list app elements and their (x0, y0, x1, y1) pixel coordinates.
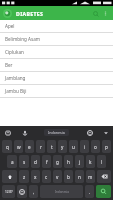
button[interactable]: z (19, 170, 29, 183)
button[interactable]: More options (101, 9, 110, 18)
button[interactable]: m (86, 170, 95, 183)
button[interactable]: . (85, 185, 94, 198)
staticText: s (23, 159, 26, 165)
staticText: w (17, 144, 21, 150)
staticText: Belimbing Asam (5, 36, 41, 42)
staticText: t (51, 144, 53, 150)
staticText: u (72, 144, 75, 150)
staticText: . (89, 189, 91, 195)
button[interactable]: y (58, 140, 67, 153)
staticText: Apel (5, 23, 15, 29)
button[interactable]: i (80, 140, 89, 153)
button[interactable]: t (47, 140, 56, 153)
button[interactable]: Jambu Biji (0, 85, 113, 97)
staticText: j (79, 159, 81, 165)
button[interactable]: Shift (2, 170, 17, 183)
button[interactable]: Indonesia (40, 185, 83, 198)
button[interactable]: e (25, 140, 34, 153)
button[interactable]: b (64, 170, 73, 183)
staticText: 123!? (5, 190, 13, 194)
button[interactable]: c (42, 170, 51, 183)
button[interactable]: l (97, 155, 106, 168)
staticText: p (105, 144, 108, 150)
staticText: h (67, 159, 70, 165)
staticText: o (94, 144, 97, 150)
staticText: n (78, 174, 81, 180)
staticText: d (34, 159, 37, 165)
staticText: k (89, 159, 92, 165)
staticText: m (88, 174, 93, 180)
button[interactable]: f (42, 155, 51, 168)
button[interactable]: d (31, 155, 40, 168)
staticText: Jamblang (5, 75, 26, 81)
button[interactable]: s (19, 155, 29, 168)
button[interactable]: u (69, 140, 78, 153)
button[interactable]: Voice input (20, 128, 29, 137)
staticText: b (67, 174, 70, 180)
staticText: x (34, 174, 37, 180)
button[interactable]: Emoji keyboard (17, 185, 27, 198)
button[interactable]: a (7, 155, 17, 168)
staticText: Ciplukan (5, 49, 24, 55)
button[interactable]: Search (96, 185, 111, 198)
staticText: DIABETES (16, 10, 44, 17)
staticText: y (61, 144, 64, 150)
button[interactable]: Hide keyboard (101, 128, 110, 137)
button[interactable]: App icon (3, 9, 12, 18)
staticText: c (45, 174, 48, 180)
button[interactable]: j (75, 155, 84, 168)
staticText: q (6, 144, 9, 150)
button[interactable]: q (2, 140, 12, 153)
staticText: f (46, 159, 48, 165)
button[interactable]: r (36, 140, 45, 153)
button[interactable]: Indonesia (44, 129, 69, 136)
button[interactable]: 123!? (2, 185, 15, 198)
staticText: , (33, 189, 35, 195)
staticText: v (56, 174, 59, 180)
button[interactable]: Backspace (97, 170, 111, 183)
button[interactable]: x (31, 170, 40, 183)
button[interactable]: Search (90, 8, 101, 19)
staticText: i (84, 144, 86, 150)
staticText: Jambu Biji (5, 88, 27, 94)
button[interactable]: Apel (0, 20, 113, 32)
staticText: r (40, 144, 42, 150)
staticText: z (23, 174, 26, 180)
button[interactable]: Jamblang (0, 72, 113, 84)
button[interactable]: n (75, 170, 84, 183)
button[interactable]: w (14, 140, 23, 153)
staticText: Indonesia (55, 190, 69, 194)
button[interactable]: p (102, 140, 111, 153)
staticText: Ber (5, 62, 13, 68)
button[interactable]: h (64, 155, 73, 168)
staticText: a (11, 159, 14, 165)
button[interactable]: o (91, 140, 100, 153)
button[interactable]: k (86, 155, 95, 168)
button[interactable]: g (53, 155, 62, 168)
button[interactable]: Ber (0, 59, 113, 71)
staticText: g (56, 159, 59, 165)
staticText: Indonesia (48, 130, 65, 135)
button[interactable]: v (53, 170, 62, 183)
staticText: e (28, 144, 31, 150)
button[interactable]: Belimbing Asam (0, 33, 113, 45)
staticText: l (101, 159, 103, 165)
button[interactable]: , (29, 185, 38, 198)
button[interactable]: Ciplukan (0, 46, 113, 58)
button[interactable]: Emoji (85, 128, 94, 137)
button[interactable]: Clipboard (3, 128, 12, 137)
